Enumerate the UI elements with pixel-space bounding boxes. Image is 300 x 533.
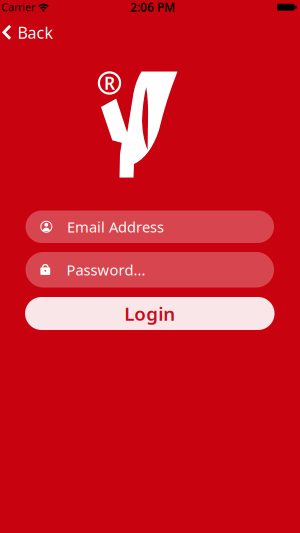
- staticText: Email Address: [67, 217, 164, 236]
- staticText: Back: [17, 22, 53, 43]
- button[interactable]: Password...: [26, 252, 274, 287]
- button[interactable]: Back: [2, 22, 53, 43]
- button[interactable]: Login: [25, 297, 275, 330]
- staticText: 2:06 PM: [130, 0, 175, 15]
- staticText: Password...: [67, 260, 146, 279]
- staticText: R: [104, 71, 115, 94]
- staticText: Carrier: [1, 0, 35, 14]
- staticText: Login: [124, 301, 175, 326]
- button[interactable]: Email Address: [26, 210, 274, 243]
